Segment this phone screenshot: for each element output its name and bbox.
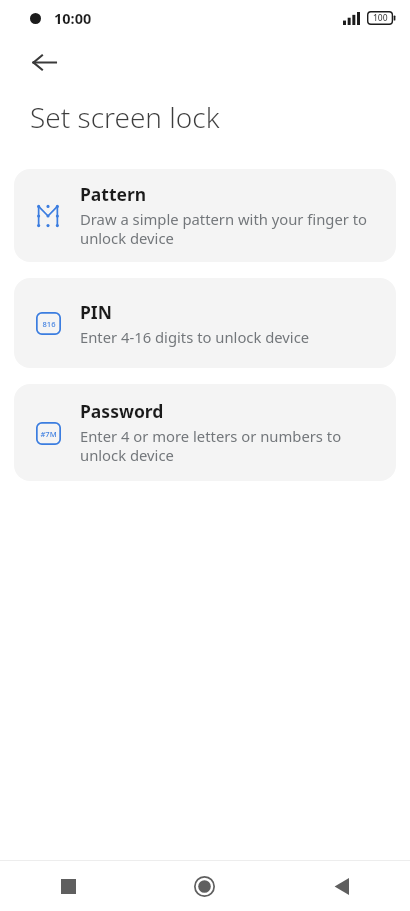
staticText: Password [80,399,164,423]
staticText: 100 [373,12,388,24]
staticText: Enter 4 or more letters or numbers to un… [80,426,380,466]
staticText: Enter 4-16 digits to unlock device [80,327,310,347]
staticText: #7M [40,429,57,439]
staticText: Set screen lock [30,98,220,136]
staticText: PIN [80,300,112,324]
button[interactable]: Back [273,861,410,911]
staticText: Pattern [80,182,147,206]
button[interactable]: Home [136,861,273,911]
button[interactable]: Back [18,36,70,88]
button[interactable]: Pattern [14,169,396,262]
staticText: 10:00 [54,8,92,28]
button[interactable]: #7M [14,384,396,481]
button[interactable]: 816 [14,278,396,368]
staticText: 816 [42,319,56,329]
button[interactable]: Recents [0,861,136,911]
staticText: Draw a simple pattern with your finger t… [80,209,380,249]
